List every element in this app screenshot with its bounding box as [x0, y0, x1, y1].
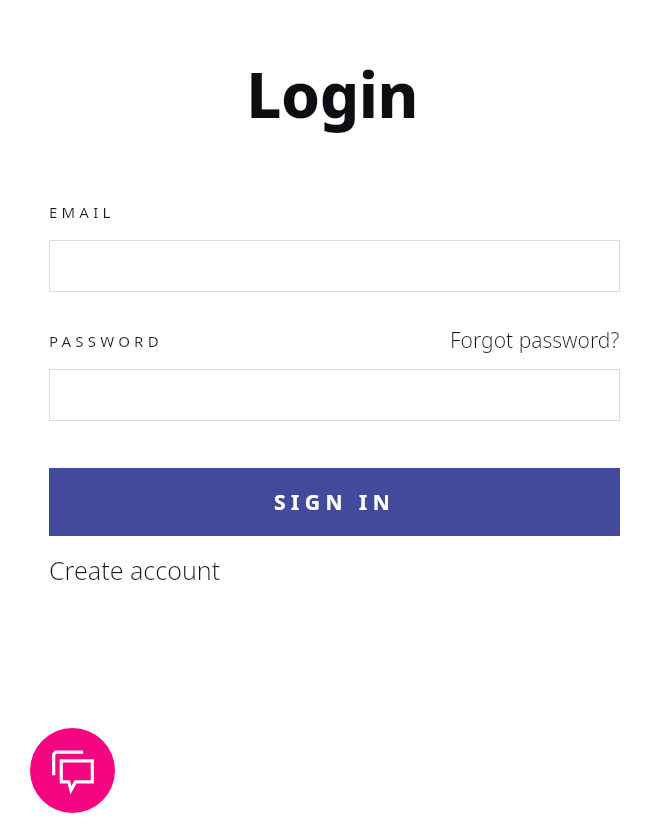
staticText: SIGN IN	[274, 488, 396, 517]
staticText: PASSWORD	[49, 331, 163, 351]
staticText: EMAIL	[49, 202, 115, 222]
button[interactable]	[49, 369, 620, 421]
button[interactable]: SIGN IN	[49, 468, 620, 536]
button[interactable]: Forgot password?	[450, 326, 620, 355]
staticText: Forgot password?	[450, 326, 620, 355]
staticText: Create account	[49, 553, 221, 587]
button[interactable]: Create account	[49, 553, 221, 587]
staticText: Login	[0, 52, 664, 136]
button[interactable]: Open chat support	[30, 728, 115, 813]
button[interactable]	[49, 240, 620, 292]
